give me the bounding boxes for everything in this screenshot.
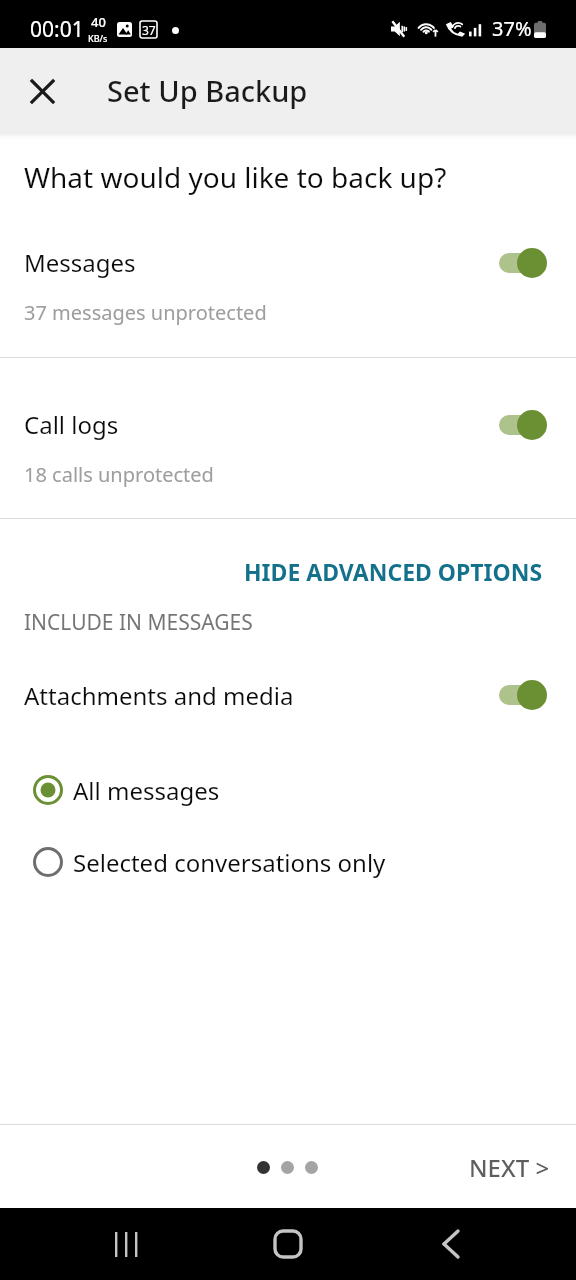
button[interactable]: Back [419,1212,483,1276]
button[interactable]: HIDE ADVANCED OPTIONS [0,543,576,599]
button[interactable]: Call logs [0,384,576,518]
button[interactable]: Back up Call logs [497,409,553,441]
staticText: 37 [142,22,156,38]
staticText: NEXT > [469,1151,550,1184]
button[interactable]: Selected conversations only [0,836,576,888]
staticText: 37% [492,15,532,42]
button[interactable]: Close [14,63,70,119]
button[interactable]: NEXT > [441,1129,576,1205]
button[interactable]: Home [256,1212,320,1276]
button[interactable]: Back up Messages [497,247,553,279]
staticText: What would you like to back up? [24,158,447,196]
staticText: HIDE ADVANCED OPTIONS [244,556,543,587]
button[interactable]: Include attachments and media [497,679,553,711]
staticText: Attachments and media [24,679,294,712]
staticText: Call logs [24,408,119,441]
staticText: All messages [73,774,220,807]
staticText: Selected conversations only [73,846,386,879]
button[interactable]: Attachments and media [0,655,576,735]
staticText: Messages [24,246,136,279]
staticText: KB/s [88,32,108,44]
staticText: 00:01 [30,15,84,44]
staticText: 40 [91,13,106,31]
button[interactable]: All messages [0,764,576,816]
staticText: 18 calls unprotected [24,461,214,488]
staticText: Set Up Backup [107,71,308,110]
staticText: 37 messages unprotected [24,299,267,326]
button[interactable]: Recent apps [95,1212,159,1276]
staticText: INCLUDE IN MESSAGES [24,608,253,637]
button[interactable]: Messages [0,222,576,357]
